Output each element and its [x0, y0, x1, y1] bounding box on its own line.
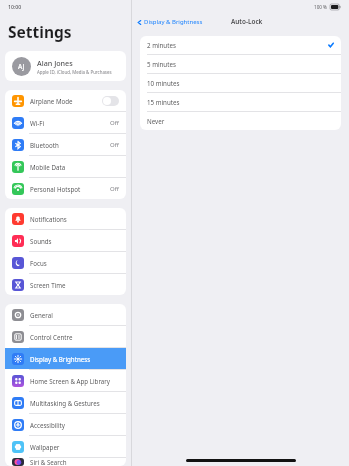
button[interactable]: 10 minutes: [140, 74, 341, 92]
staticText: Mobile Data: [30, 163, 119, 171]
button[interactable]: Wallpaper: [5, 436, 126, 457]
staticText: 10 minutes: [147, 79, 334, 87]
button[interactable]: Display & Brightness: [134, 16, 206, 28]
button[interactable]: Personal Hotspot: [5, 178, 126, 199]
button[interactable]: Never: [140, 112, 341, 130]
staticText: Multitasking & Gestures: [30, 399, 119, 407]
staticText: Notifications: [30, 215, 119, 223]
staticText: Sounds: [30, 237, 119, 245]
button[interactable]: Airplane Mode toggle: [102, 96, 119, 106]
button[interactable]: Home Screen & App Library: [5, 370, 126, 391]
staticText: AJ: [18, 62, 25, 71]
button[interactable]: Focus: [5, 252, 126, 273]
staticText: Home Screen & App Library: [30, 377, 119, 385]
button[interactable]: Multitasking & Gestures: [5, 392, 126, 413]
staticText: Off: [110, 119, 119, 127]
staticText: Off: [110, 185, 119, 193]
staticText: Apple ID, iCloud, Media & Purchases: [37, 69, 112, 75]
button[interactable]: Notifications: [5, 208, 126, 229]
button[interactable]: Siri & Search: [5, 458, 126, 466]
staticText: Display & Brightness: [144, 18, 203, 26]
button[interactable]: Control Centre: [5, 326, 126, 347]
staticText: Auto-Lock: [231, 17, 263, 26]
staticText: 10:00: [8, 3, 22, 10]
button[interactable]: Screen Time: [5, 274, 126, 295]
staticText: Wi-Fi: [30, 119, 110, 127]
staticText: Off: [110, 141, 119, 149]
button[interactable]: Sounds: [5, 230, 126, 251]
staticText: Display & Brightness: [30, 355, 119, 363]
staticText: Never: [147, 117, 334, 125]
staticText: Focus: [30, 259, 119, 267]
staticText: Personal Hotspot: [30, 185, 110, 193]
staticText: Settings: [8, 21, 72, 42]
staticText: Bluetooth: [30, 141, 110, 149]
button[interactable]: 15 minutes: [140, 93, 341, 111]
staticText: Control Centre: [30, 333, 119, 341]
button[interactable]: Mobile Data: [5, 156, 126, 177]
button[interactable]: General: [5, 304, 126, 325]
staticText: Airplane Mode: [30, 97, 102, 105]
staticText: Alan Jones: [37, 58, 73, 68]
staticText: 5 minutes: [147, 60, 334, 68]
staticText: Siri & Search: [30, 458, 119, 466]
staticText: 2 minutes: [147, 41, 328, 49]
button[interactable]: Display & Brightness: [5, 348, 126, 369]
staticText: 15 minutes: [147, 98, 334, 106]
button[interactable]: Bluetooth: [5, 134, 126, 155]
staticText: General: [30, 311, 119, 319]
button[interactable]: Airplane Mode: [5, 90, 126, 111]
button[interactable]: 5 minutes: [140, 55, 341, 73]
button[interactable]: 2 minutes: [140, 36, 341, 54]
staticText: Wallpaper: [30, 443, 119, 451]
staticText: 100 %: [314, 4, 327, 10]
button[interactable]: Wi-Fi: [5, 112, 126, 133]
button[interactable]: Accessibility: [5, 414, 126, 435]
staticText: Accessibility: [30, 421, 119, 429]
button[interactable]: AJ: [5, 51, 126, 81]
staticText: Screen Time: [30, 281, 119, 289]
